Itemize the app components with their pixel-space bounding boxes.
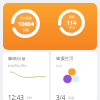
button[interactable]: 健康生活 (51, 52, 97, 100)
staticText: 昨晚 06月30日 (8, 64, 27, 68)
staticText: 千卡 (69, 26, 75, 30)
button[interactable]: 今日步数 (3, 3, 97, 50)
staticText: 完成 (68, 96, 74, 100)
staticText: 12:43 (8, 93, 24, 100)
staticText: 步数 (23, 28, 29, 32)
staticText: 今日步数 (20, 16, 32, 20)
staticText: 10664 (18, 20, 34, 28)
staticText: 消耗 (69, 15, 75, 19)
staticText: 今日 (56, 64, 62, 68)
staticText: 健康生活 (56, 56, 74, 62)
staticText: 114 (67, 19, 77, 26)
staticText: 3/4 (56, 93, 66, 100)
button[interactable]: 睡眠记录 (3, 52, 49, 100)
staticText: 睡眠记录 (8, 56, 26, 62)
staticText: 小时 (26, 96, 32, 100)
